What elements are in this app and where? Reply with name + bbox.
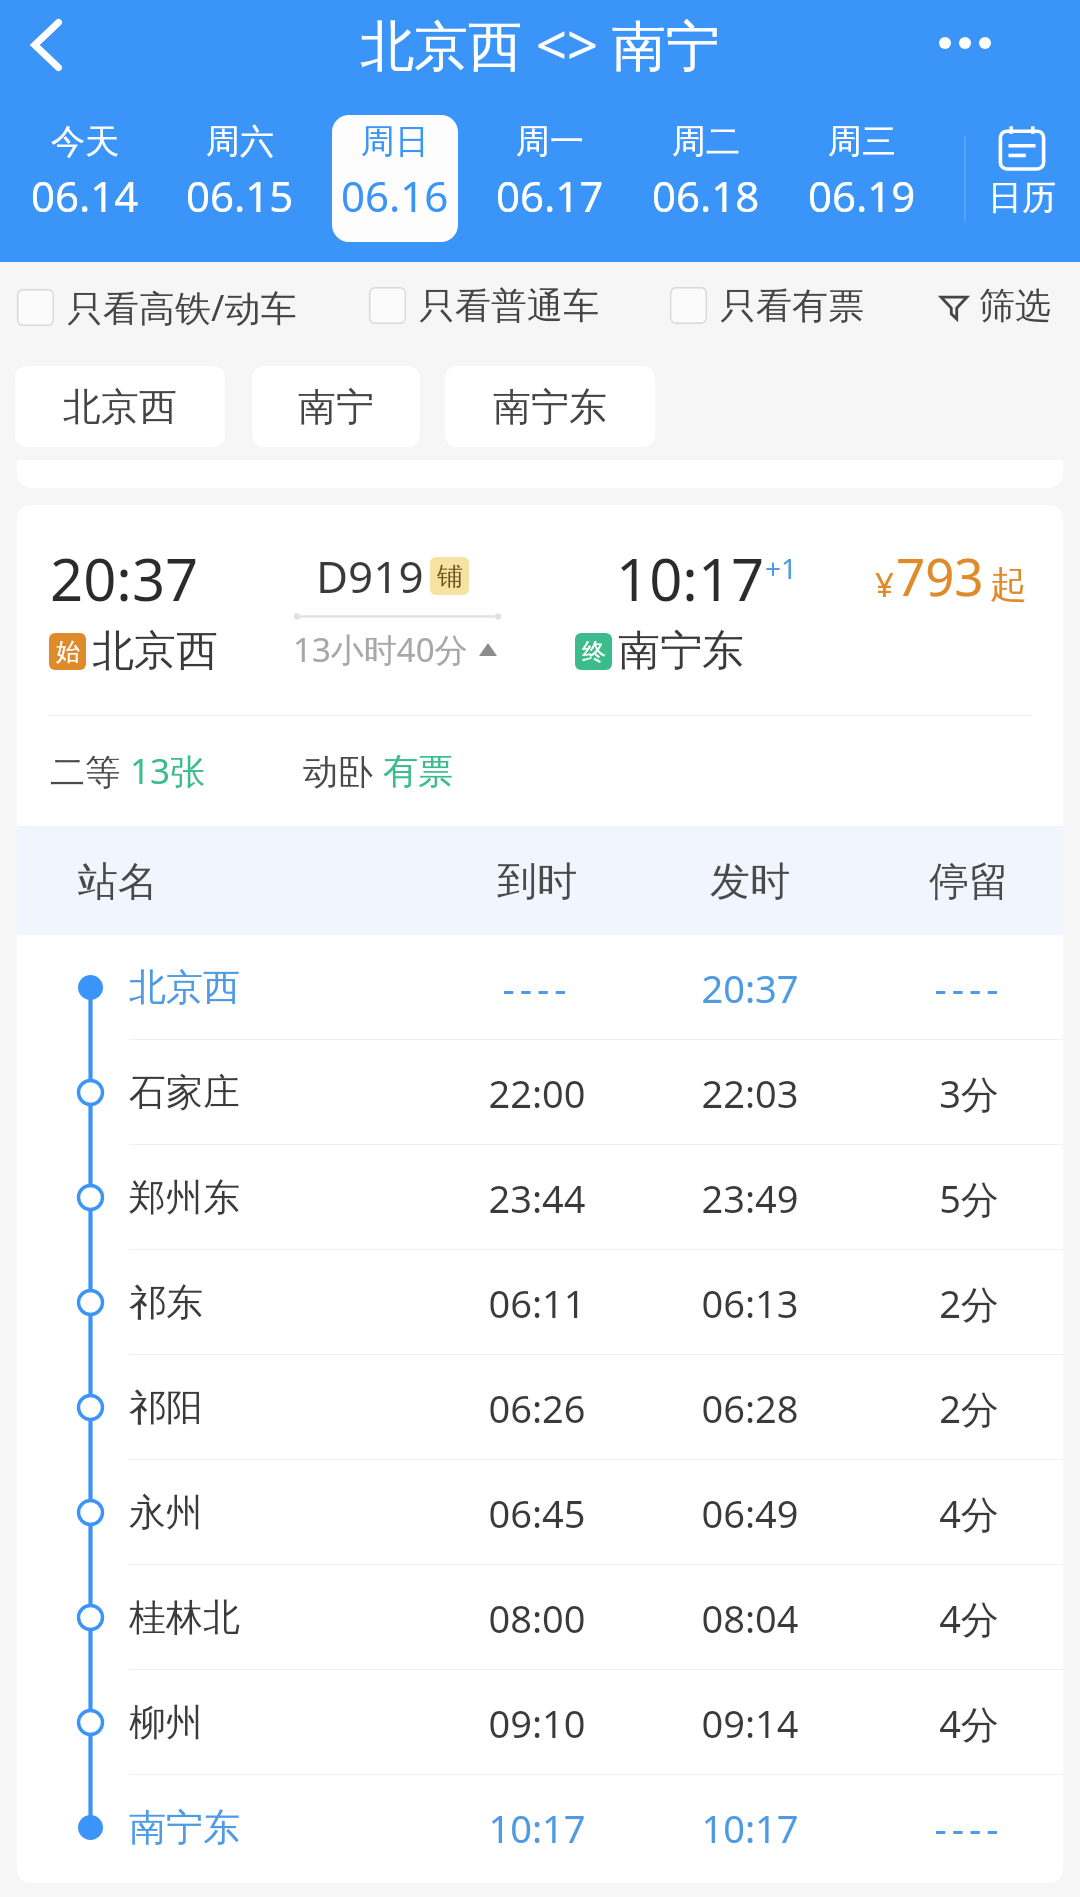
staticText: 09:10 [437, 1697, 637, 1749]
staticText: 4分 [869, 1697, 1063, 1749]
staticText: 20:37 [50, 539, 199, 618]
staticText: 祁阳 [129, 1384, 203, 1431]
staticText: 有票 [383, 749, 453, 793]
staticText: 06:13 [650, 1277, 850, 1329]
button[interactable]: 石家庄 [17, 1040, 1063, 1145]
staticText: 2分 [869, 1277, 1063, 1329]
staticText: 铺 [437, 560, 463, 593]
staticText: 22:00 [437, 1067, 637, 1119]
button[interactable]: 南宁东 [445, 366, 655, 447]
staticText: 北京西 [129, 964, 240, 1011]
staticText: 06.16 [341, 167, 449, 224]
staticText: 793 [896, 541, 984, 610]
staticText: 22:03 [650, 1067, 850, 1119]
staticText: 北京西 [63, 383, 177, 431]
staticText: 今天 [51, 120, 119, 163]
staticText: 06:28 [650, 1382, 850, 1434]
staticText: 06.17 [496, 167, 604, 224]
staticText: ---- [869, 962, 1063, 1014]
staticText: 石家庄 [129, 1069, 240, 1116]
button[interactable]: 柳州 [17, 1670, 1063, 1775]
staticText: 停留 [869, 856, 1063, 906]
staticText: 筛选 [979, 283, 1051, 328]
staticText: 06.14 [31, 167, 139, 224]
staticText: 10:17 [616, 539, 765, 618]
staticText: 4分 [869, 1592, 1063, 1644]
staticText: 2分 [869, 1382, 1063, 1434]
staticText: 日历 [988, 176, 1056, 219]
staticText: 只看普通车 [419, 283, 599, 328]
staticText: 09:14 [650, 1697, 850, 1749]
button[interactable]: 周二 [643, 115, 769, 242]
staticText: 06.18 [652, 167, 760, 224]
staticText: 13小时40分 [293, 627, 468, 672]
staticText: 06:45 [437, 1487, 637, 1539]
staticText: 终 [582, 637, 606, 667]
button[interactable]: 今天 [22, 115, 148, 242]
staticText: 祁东 [129, 1279, 203, 1326]
staticText: 周日 [361, 120, 429, 163]
button[interactable]: Calendar [964, 87, 1080, 254]
staticText: 10:17 [650, 1802, 850, 1854]
staticText: 起 [990, 561, 1027, 608]
staticText: 柳州 [129, 1699, 203, 1746]
button[interactable]: 只看高铁/动车 [17, 283, 297, 332]
staticText: 23:44 [437, 1172, 637, 1224]
staticText: ---- [869, 1802, 1063, 1854]
staticText: 13张 [130, 747, 206, 795]
button[interactable]: 郑州东 [17, 1145, 1063, 1250]
staticText: 06.19 [808, 167, 916, 224]
button[interactable] [17, 505, 1063, 826]
staticText: 二等 [50, 747, 130, 795]
staticText: 06:49 [650, 1487, 850, 1539]
button[interactable]: 只看普通车 [369, 283, 599, 328]
staticText: 周二 [672, 120, 740, 163]
button[interactable]: 祁东 [17, 1250, 1063, 1355]
staticText: 站名 [78, 856, 158, 906]
button[interactable]: 北京西 [17, 935, 1063, 1040]
staticText: 10:17 [437, 1802, 637, 1854]
button[interactable]: 祁阳 [17, 1355, 1063, 1460]
staticText: 周三 [828, 120, 896, 163]
staticText: 3分 [869, 1067, 1063, 1119]
staticText: 23:49 [650, 1172, 850, 1224]
staticText: 周一 [516, 120, 584, 163]
staticText: 始 [56, 637, 80, 667]
button[interactable]: Back [7, 10, 83, 86]
staticText: 南宁 [298, 383, 374, 431]
button[interactable]: 周三 [799, 115, 925, 242]
staticText: 南宁东 [129, 1804, 240, 1851]
staticText: 06:26 [437, 1382, 637, 1434]
staticText: 动卧 [303, 747, 383, 795]
button[interactable]: 北京西 [15, 366, 225, 447]
button[interactable]: 周日 [332, 115, 458, 242]
staticText: 5分 [869, 1172, 1063, 1224]
button[interactable]: 只看有票 [670, 283, 864, 328]
button[interactable]: 周一 [487, 115, 613, 242]
staticText: 北京西 <> 南宁 [360, 7, 720, 81]
staticText: 郑州东 [129, 1174, 240, 1221]
staticText: 桂林北 [129, 1594, 240, 1641]
staticText: ---- [437, 962, 637, 1014]
staticText: 4分 [869, 1487, 1063, 1539]
button[interactable]: More options [925, 8, 1005, 88]
button[interactable]: 南宁 [252, 366, 420, 447]
staticText: 06.15 [186, 167, 294, 224]
staticText: D919 [316, 546, 424, 606]
button[interactable]: 永州 [17, 1460, 1063, 1565]
button[interactable]: 周六 [177, 115, 303, 242]
staticText: 周六 [206, 120, 274, 163]
staticText: +1 [765, 549, 798, 587]
staticText: 南宁东 [618, 625, 744, 678]
staticText: ¥ [875, 562, 894, 607]
button[interactable]: 筛选 [937, 283, 1051, 328]
button[interactable]: 南宁东 [17, 1775, 1063, 1880]
staticText: 永州 [129, 1489, 203, 1536]
button[interactable]: 桂林北 [17, 1565, 1063, 1670]
staticText: 到时 [437, 856, 637, 906]
staticText: 发时 [650, 856, 850, 906]
staticText: 06:11 [437, 1277, 637, 1329]
staticText: 08:00 [437, 1592, 637, 1644]
staticText: 只看高铁/动车 [67, 283, 297, 332]
staticText: 08:04 [650, 1592, 850, 1644]
